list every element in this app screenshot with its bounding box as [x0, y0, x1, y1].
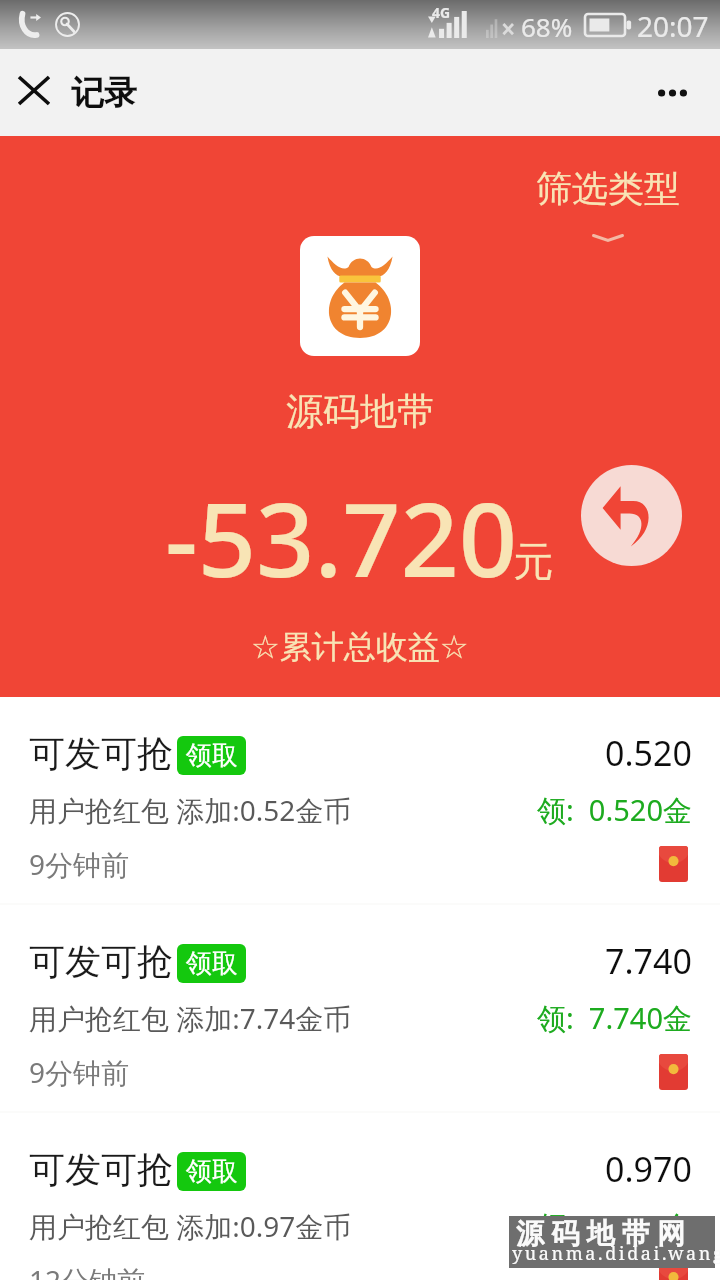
- staticText: 筛选类型: [536, 166, 680, 211]
- staticText: 可发可抢: [29, 1147, 173, 1192]
- staticText: 源码地带: [286, 388, 434, 435]
- staticText: 用户抢红包 添加:0.97金币: [29, 1207, 352, 1245]
- button[interactable]: Close: [0, 49, 68, 136]
- staticText: 领取: [186, 739, 238, 772]
- button[interactable]: 领取: [177, 736, 246, 775]
- staticText: 20:07: [637, 7, 709, 45]
- staticText: 源 码 地 带 网: [516, 1213, 686, 1251]
- button[interactable]: 领取: [177, 1152, 246, 1191]
- staticText: 68%: [521, 9, 573, 44]
- staticText: 12分钟前: [29, 1261, 146, 1280]
- staticText: 用户抢红包 添加:7.74金币: [29, 999, 352, 1037]
- staticText: 9分钟前: [29, 845, 130, 883]
- staticText: 可发可抢: [29, 731, 173, 776]
- staticText: 领: 0.970金: [537, 1206, 692, 1246]
- staticText: 9分钟前: [29, 1053, 130, 1091]
- staticText: 领: 7.740金: [537, 998, 692, 1038]
- button[interactable]: 领取: [177, 944, 246, 983]
- staticText: 用户抢红包 添加:0.52金币: [29, 791, 352, 829]
- staticText: yuanma.didai.wang: [512, 1241, 720, 1266]
- button[interactable]: Filter type: [536, 166, 680, 242]
- staticText: ☆累计总收益☆: [251, 627, 469, 667]
- staticText: 0.520: [605, 730, 692, 776]
- staticText: 领取: [186, 947, 238, 980]
- staticText: 领: 0.520金: [537, 790, 692, 830]
- button[interactable]: 可发可抢: [0, 905, 720, 1111]
- staticText: 7.740: [605, 938, 692, 984]
- button[interactable]: 可发可抢: [0, 697, 720, 903]
- staticText: 0.970: [605, 1146, 692, 1192]
- staticText: 元: [513, 536, 553, 586]
- staticText: 领取: [186, 1155, 238, 1188]
- button[interactable]: 可发可抢: [0, 1113, 720, 1280]
- staticText: 记录: [71, 72, 137, 114]
- staticText: 可发可抢: [29, 939, 173, 984]
- staticText: -53.720: [165, 468, 518, 607]
- button[interactable]: More options: [625, 49, 720, 136]
- button[interactable]: Undo: [581, 465, 682, 566]
- staticText: 4G: [432, 3, 451, 22]
